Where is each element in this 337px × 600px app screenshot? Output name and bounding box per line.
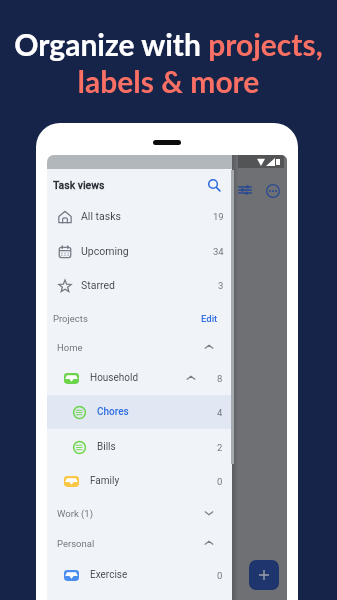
button[interactable]: Family — [47, 464, 232, 498]
button[interactable]: Starred — [47, 268, 232, 302]
staticText: Bills — [97, 441, 116, 453]
staticText: 0 — [217, 570, 223, 581]
button[interactable]: Household — [47, 361, 232, 395]
button[interactable]: Exercise — [47, 558, 232, 592]
button[interactable]: Filter tasks — [235, 180, 255, 200]
staticText: Starred — [81, 279, 115, 291]
staticText: 8 — [217, 373, 223, 384]
button[interactable]: All tasks — [47, 199, 232, 233]
staticText: Task views — [53, 179, 105, 191]
staticText: Household — [90, 372, 139, 384]
button[interactable]: More options — [266, 184, 280, 198]
staticText: Personal — [57, 538, 95, 549]
staticText: Upcoming — [81, 245, 129, 257]
staticText: Exercise — [90, 569, 128, 581]
staticText: Edit — [201, 313, 218, 324]
staticText: 4 — [217, 407, 223, 418]
staticText: Home — [57, 342, 83, 353]
staticText: 34 — [213, 246, 224, 257]
button[interactable]: Projects — [47, 304, 232, 332]
button[interactable]: Bills — [47, 430, 232, 464]
staticText: 3 — [218, 280, 224, 291]
staticText: 19 — [213, 211, 224, 222]
staticText: Projects — [53, 313, 88, 324]
staticText: Family — [90, 475, 120, 487]
staticText: All tasks — [81, 210, 121, 222]
staticText: 2 — [217, 442, 223, 453]
button[interactable]: Add task — [249, 560, 279, 590]
staticText: Work (1) — [57, 508, 93, 519]
button[interactable]: Work (1) — [47, 499, 232, 527]
staticText: Chores — [97, 406, 129, 418]
button[interactable]: Chores — [47, 395, 232, 429]
button[interactable]: Upcoming — [47, 234, 232, 268]
staticText: Organize with projects, labels & more — [0, 26, 337, 99]
button[interactable]: Search — [204, 175, 224, 195]
button[interactable]: Home — [47, 333, 232, 361]
staticText: 0 — [217, 476, 223, 487]
button[interactable]: Personal — [47, 529, 232, 557]
